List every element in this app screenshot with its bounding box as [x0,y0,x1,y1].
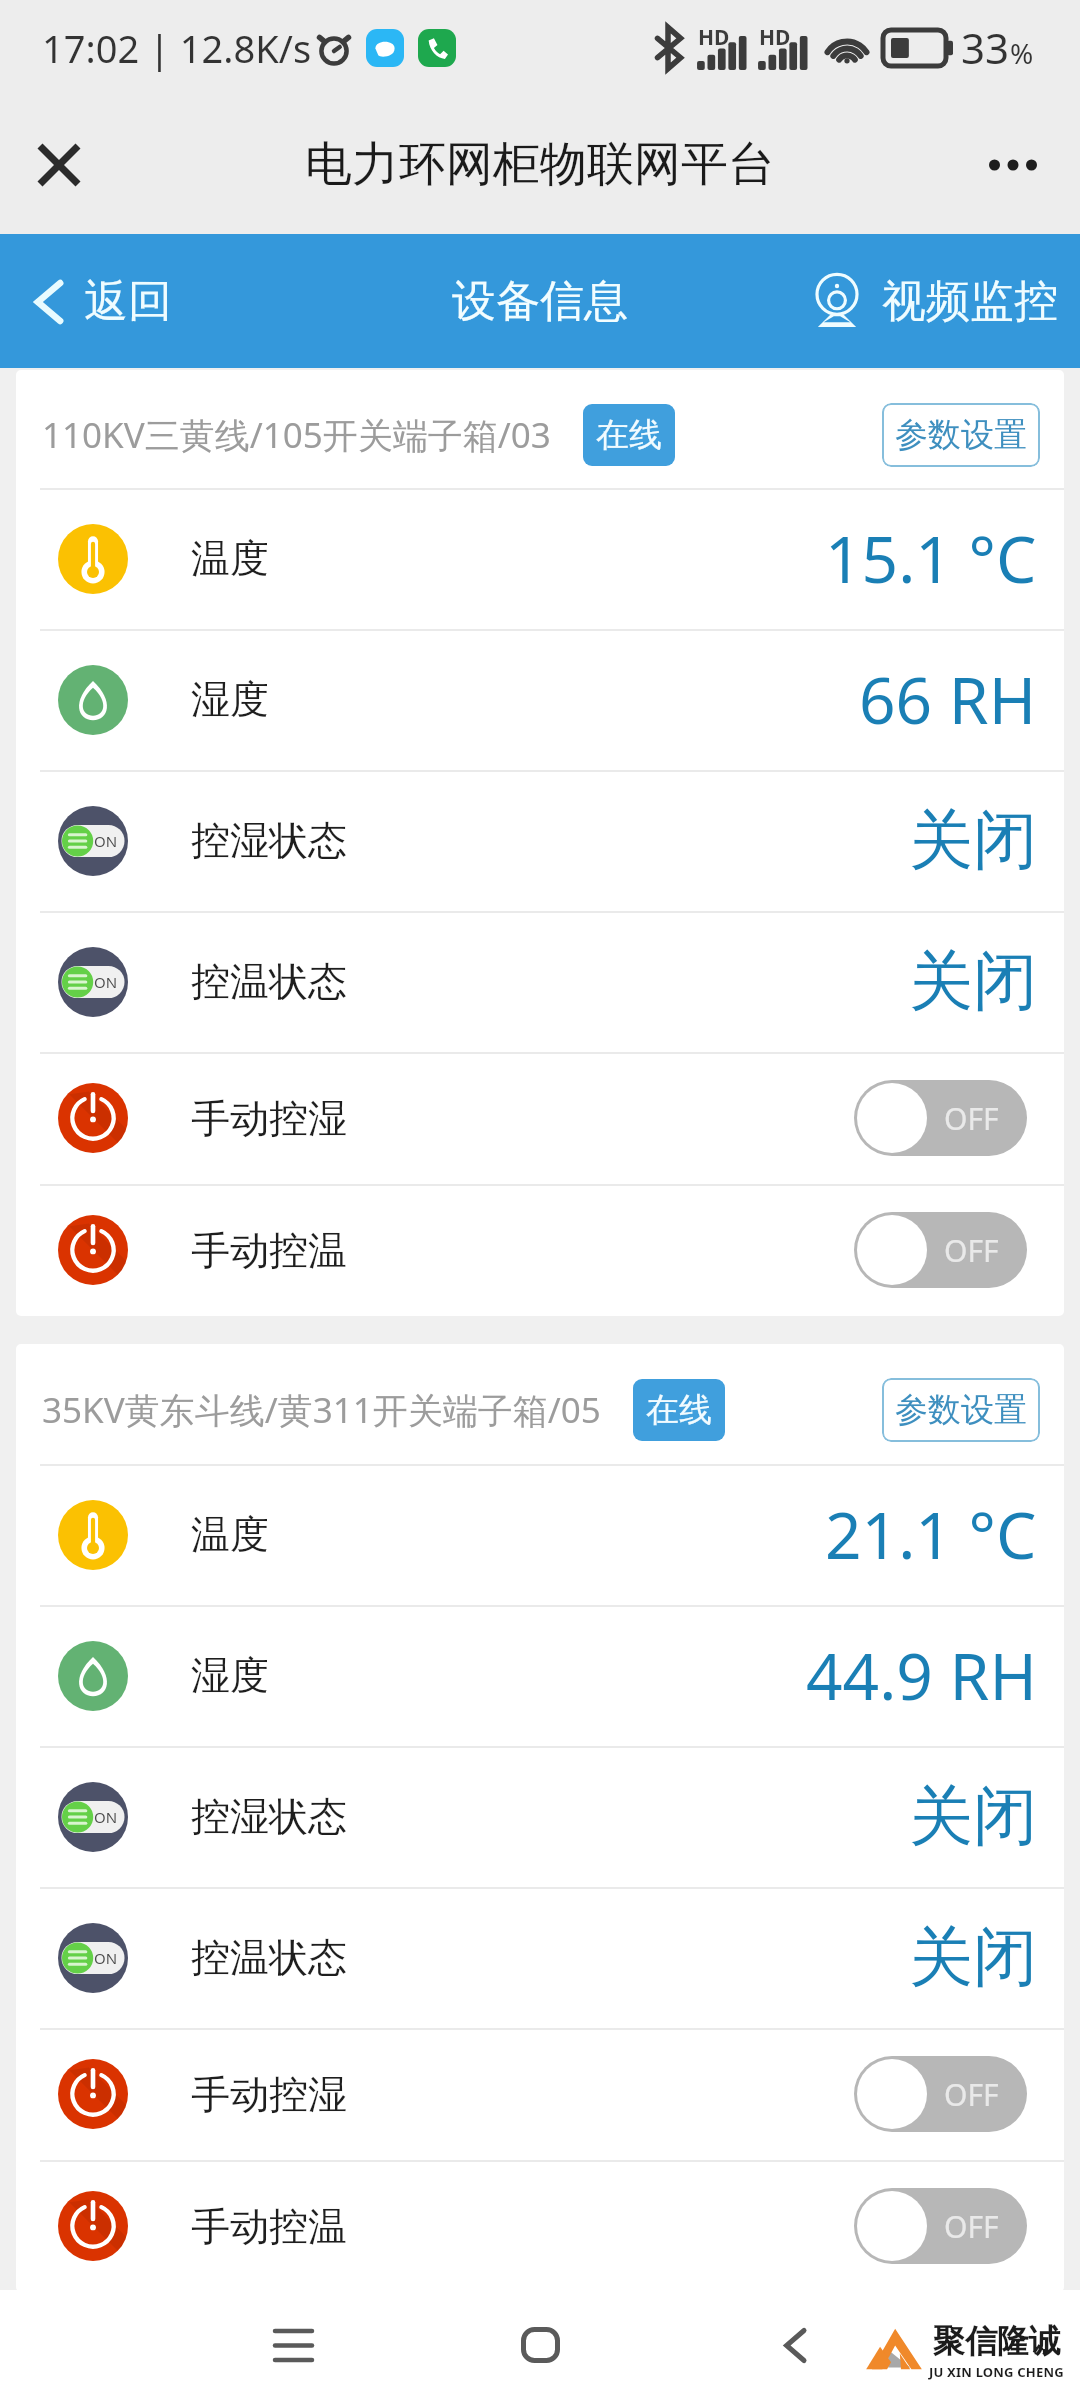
button[interactable]: 参数设置 [882,403,1040,467]
staticText: 手动控湿 [191,2070,347,2119]
staticText: 110KV三黄线/105开关端子箱/03 [42,411,551,459]
staticText: 44.9 RH [806,1632,1037,1719]
button[interactable]: 湿度 [16,1605,1064,1746]
staticText: 控湿状态 [191,1792,347,1841]
staticText: HD [759,23,791,52]
staticText: 湿度 [191,1651,269,1700]
button[interactable]: 参数设置 [882,1378,1040,1442]
staticText: 手动控湿 [191,1094,347,1143]
staticText: OFF [944,1230,999,1271]
staticText: 控湿状态 [191,816,347,865]
staticText: HD [698,23,730,52]
staticText: 控温状态 [191,957,347,1006]
button[interactable]: Recents [248,2300,338,2390]
button[interactable]: ON [16,911,1064,1052]
button[interactable]: Toggle 手动控湿 [854,2056,1027,2132]
button[interactable]: ON [16,1746,1064,1887]
button[interactable]: Toggle 手动控温 [854,1212,1027,1288]
staticText: 35KV黄东斗线/黄311开关端子箱/05 [42,1386,601,1434]
button[interactable]: Toggle 手动控温 [854,2188,1027,2264]
staticText: 21.1 °C [825,1491,1037,1578]
staticText: 17:02 | 12.8K/s [42,22,312,74]
button[interactable]: 温度 [16,1464,1064,1605]
button[interactable]: 手动控温 [16,1184,1064,1316]
staticText: 15.1 °C [825,515,1037,602]
staticText: 温度 [191,1510,269,1559]
staticText: OFF [944,2074,999,2115]
button[interactable]: Toggle 手动控湿 [854,1080,1027,1156]
staticText: 视频监控 [882,274,1058,329]
staticText: ON [94,1807,118,1827]
staticText: ON [94,972,118,992]
staticText: 关闭 [909,941,1037,1022]
staticText: 温度 [191,534,269,583]
button[interactable]: 在线 [583,404,675,466]
button[interactable]: 温度 [16,488,1064,629]
staticText: 参数设置 [895,414,1027,456]
staticText: 手动控温 [191,2202,347,2251]
staticText: 湿度 [191,675,269,724]
staticText: JU XIN LONG CHENG [929,2363,1064,2381]
staticText: 电力环网柜物联网平台 [305,135,775,194]
button[interactable]: More options [968,120,1058,210]
button[interactable]: Close [14,120,104,210]
button[interactable]: 手动控湿 [16,2028,1064,2160]
staticText: 手动控温 [191,1226,347,1275]
staticText: 返回 [84,274,172,329]
button[interactable]: 手动控温 [16,2160,1064,2292]
button[interactable]: Home [495,2300,585,2390]
staticText: 参数设置 [895,1389,1027,1431]
staticText: 关闭 [909,1776,1037,1857]
staticText: ON [94,1948,118,1968]
staticText: 关闭 [909,1917,1037,1998]
button[interactable]: ON [16,1887,1064,2028]
staticText: 控温状态 [191,1933,347,1982]
button[interactable]: 视频监控 [798,252,1080,350]
button[interactable]: 返回 [0,254,192,349]
staticText: OFF [944,1098,999,1139]
staticText: % [1010,34,1034,72]
button[interactable]: 手动控湿 [16,1052,1064,1184]
staticText: OFF [944,2206,999,2247]
staticText: 设备信息 [452,274,628,329]
staticText: 在线 [646,1389,712,1431]
staticText: 在线 [596,414,662,456]
button[interactable]: Back [750,2300,840,2390]
staticText: 33 [961,19,1010,76]
staticText: ON [94,831,118,851]
staticText: 聚信隆诚 [933,2321,1061,2361]
staticText: 关闭 [909,800,1037,881]
button[interactable]: 在线 [633,1379,725,1441]
button[interactable]: ON [16,770,1064,911]
button[interactable]: 湿度 [16,629,1064,770]
staticText: 66 RH [859,656,1037,743]
